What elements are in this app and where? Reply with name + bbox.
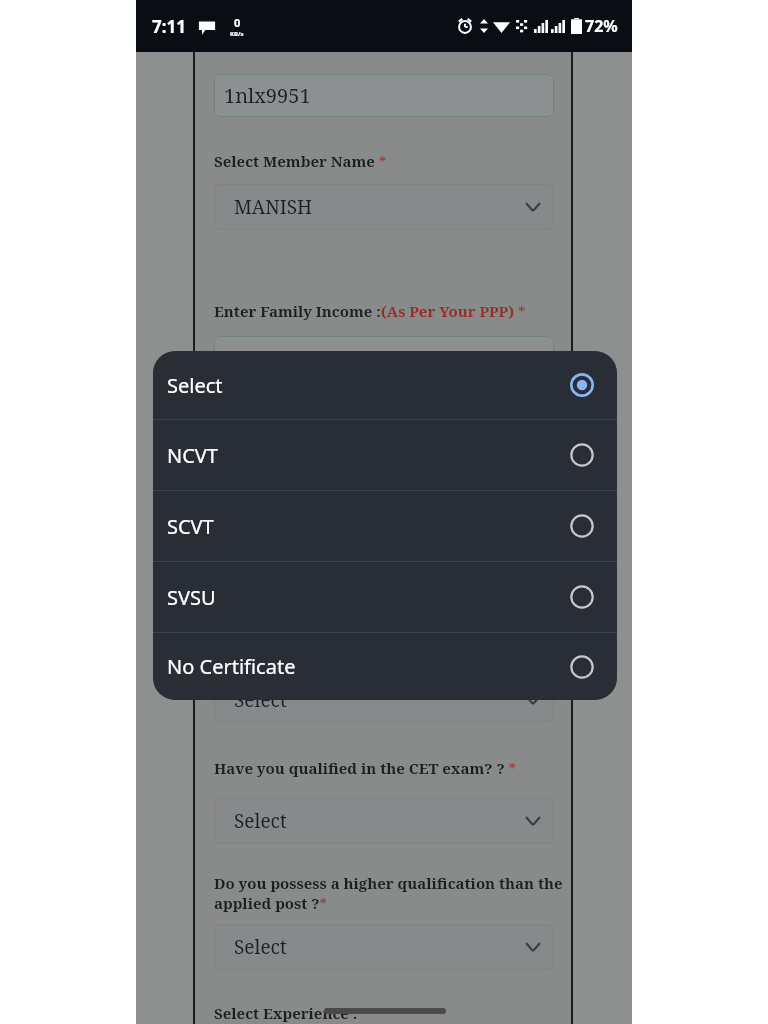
button[interactable]: Select [214, 798, 554, 844]
staticText: KB/s [230, 30, 244, 38]
button[interactable]: SCVT [153, 491, 617, 561]
staticText: Select [234, 934, 287, 960]
button[interactable]: Select [153, 351, 617, 419]
staticText: NCVT [167, 442, 218, 469]
staticText: Enter Family Income :(As Per Your PPP) * [214, 301, 526, 321]
staticText: Select Experience :* [214, 1003, 365, 1023]
staticText: No Certificate [167, 653, 296, 680]
staticText: 1nlx9951 [224, 82, 311, 109]
button[interactable]: SVSU [153, 562, 617, 632]
staticText: Have you qualified in the CET exam? ? * [214, 758, 517, 778]
button[interactable]: Select [214, 678, 554, 722]
staticText: 7:11 [152, 15, 186, 38]
staticText: SCVT [167, 513, 214, 540]
staticText: MANISH [234, 194, 313, 220]
staticText: Select [234, 808, 287, 834]
button[interactable]: MANISH [214, 184, 554, 230]
button[interactable]: NCVT [153, 420, 617, 490]
button[interactable]: 1nlx9951 [214, 74, 554, 117]
staticText: Select [167, 372, 223, 399]
staticText: Do you possess a higher qualification th… [214, 873, 563, 913]
staticText: Select [234, 687, 287, 713]
staticText: SVSU [167, 584, 216, 611]
staticText: Select Member Name * [214, 151, 387, 171]
button[interactable] [214, 336, 554, 382]
staticText: 72% [585, 15, 618, 37]
button[interactable]: No Certificate [153, 633, 617, 700]
button[interactable]: Select [214, 924, 554, 970]
staticText: 0 [234, 15, 241, 30]
